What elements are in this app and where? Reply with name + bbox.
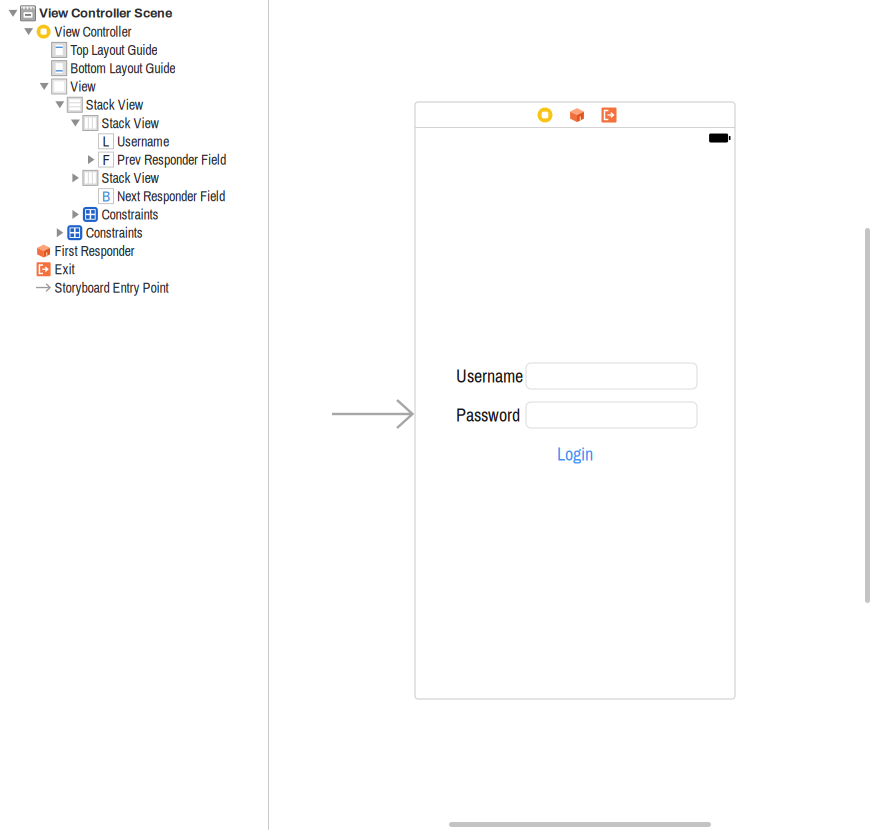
- staticText: Storyboard Entry Point: [55, 278, 169, 297]
- staticText: Login: [557, 442, 593, 466]
- staticText: Bottom Layout Guide: [70, 59, 175, 78]
- button[interactable]: Exit: [0, 260, 268, 278]
- staticText: Constraints: [86, 223, 143, 242]
- staticText: View Controller Scene: [39, 6, 172, 20]
- button[interactable]: First Responder: [567, 105, 587, 125]
- button[interactable]: Stack View: [0, 169, 268, 187]
- button[interactable]: Constraints: [0, 224, 268, 242]
- button[interactable]: View Controller Scene: [0, 4, 268, 22]
- button[interactable]: Login: [415, 445, 735, 463]
- button[interactable]: Exit: [599, 105, 619, 125]
- staticText: Stack View: [101, 168, 158, 187]
- staticText: View: [70, 77, 95, 96]
- button[interactable]: First Responder: [0, 242, 268, 260]
- button[interactable]: Top Layout Guide: [0, 41, 268, 59]
- button[interactable]: Constraints: [0, 205, 268, 224]
- staticText: First Responder: [55, 241, 135, 260]
- staticText: Username: [117, 132, 169, 151]
- staticText: View Controller: [55, 22, 132, 41]
- button[interactable]: B: [0, 187, 268, 205]
- button[interactable]: Storyboard Entry Point: [0, 278, 268, 297]
- button[interactable]: View Controller: [535, 105, 555, 125]
- staticText: F: [102, 150, 109, 169]
- button[interactable]: View: [0, 77, 268, 96]
- staticText: Stack View: [101, 113, 158, 132]
- button[interactable]: Stack View: [0, 96, 268, 114]
- staticText: Prev Responder Field: [117, 150, 226, 169]
- button[interactable]: View Controller: [0, 22, 268, 41]
- staticText: Stack View: [86, 95, 143, 114]
- button[interactable]: Stack View: [0, 114, 268, 132]
- staticText: Exit: [55, 260, 75, 279]
- staticText: Next Responder Field: [117, 187, 225, 206]
- staticText: Top Layout Guide: [70, 40, 157, 59]
- button[interactable]: L: [0, 132, 268, 150]
- staticText: Constraints: [101, 205, 158, 224]
- staticText: Username: [456, 364, 523, 388]
- button[interactable]: F: [0, 150, 268, 169]
- button[interactable]: Bottom Layout Guide: [0, 59, 268, 77]
- staticText: L: [102, 131, 109, 151]
- staticText: B: [102, 186, 110, 206]
- staticText: Password: [456, 403, 520, 427]
